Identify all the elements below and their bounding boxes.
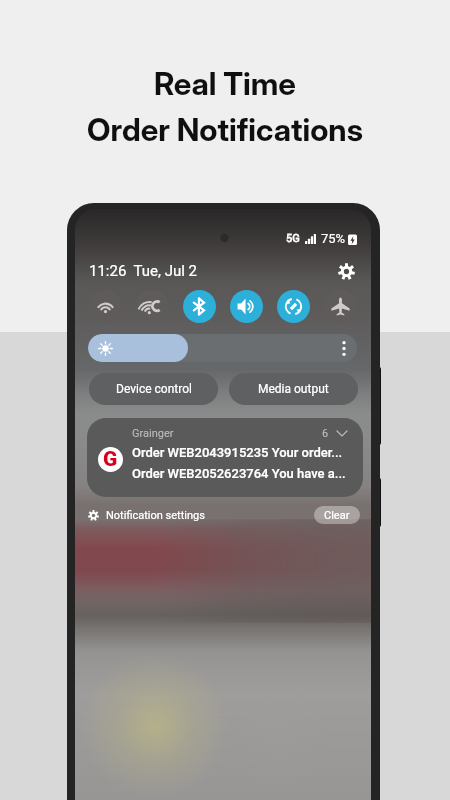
staticText: G [103,447,118,472]
button[interactable]: More options [342,341,346,356]
button[interactable]: Auto rotate [277,290,310,323]
button[interactable]: Airplane mode [324,290,357,323]
button[interactable]: Notification settings [88,509,205,522]
staticText: Clear [324,509,350,522]
button[interactable]: Clear [314,506,360,524]
staticText: Notification settings [106,509,205,522]
staticText: Device control [116,382,192,396]
button[interactable]: Wi-Fi [89,290,122,323]
button[interactable]: Bluetooth [183,290,216,323]
button[interactable]: Grainger [87,418,363,497]
button[interactable]: Media output [229,373,358,405]
staticText: 11:26 Tue, Jul 2 [89,262,197,280]
staticText: Real Time [154,65,296,103]
button[interactable]: Sound [230,290,263,323]
button[interactable]: Brightness [88,334,357,362]
staticText: 75% [321,231,346,246]
staticText: Order WEB2052623764 You have a... [132,466,346,481]
staticText: Media output [258,382,329,396]
staticText: 5G [286,232,300,245]
button[interactable]: Wi-Fi calling [136,290,169,323]
staticText: 6 [322,427,329,440]
button[interactable]: Settings [334,259,358,283]
staticText: Order Notifications [87,111,363,149]
button[interactable]: Device control [89,373,218,405]
staticText: Order WEB2043915235 Your order... [132,445,343,460]
staticText: Grainger [132,427,174,440]
